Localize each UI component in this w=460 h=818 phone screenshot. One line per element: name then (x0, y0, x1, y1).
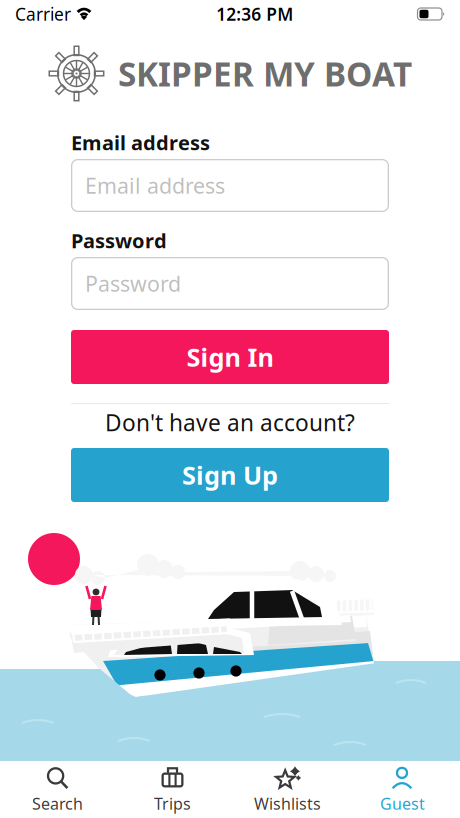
button[interactable]: Trips (115, 761, 230, 818)
button[interactable]: Guest (345, 761, 460, 818)
button[interactable]: Password (71, 257, 389, 310)
button[interactable]: Email address (71, 159, 389, 212)
button[interactable]: Sign Up (71, 448, 389, 502)
staticText: Password (85, 269, 181, 298)
staticText: Trips (154, 793, 191, 814)
staticText: Guest (380, 793, 425, 814)
button[interactable]: Search (0, 761, 115, 818)
staticText: Don't have an account? (105, 407, 355, 437)
button[interactable]: Sign In (71, 330, 389, 384)
staticText: Wishlists (254, 793, 321, 814)
staticText: Sign Up (182, 458, 278, 492)
staticText: Email address (85, 171, 225, 200)
staticText: Carrier (15, 2, 71, 25)
staticText: 12:36 PM (216, 2, 293, 25)
staticText: Search (32, 793, 83, 814)
staticText: SKIPPER MY BOAT (118, 51, 412, 96)
staticText: Email address (71, 129, 210, 156)
staticText: Password (71, 227, 167, 254)
staticText: Sign In (186, 340, 273, 374)
button[interactable]: Wishlists (230, 761, 345, 818)
